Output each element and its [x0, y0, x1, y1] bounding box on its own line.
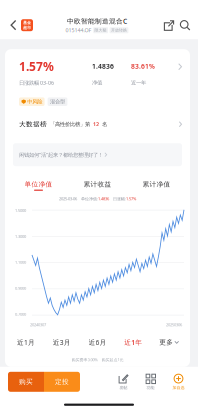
- staticText: 闲钱如何“活”起来？都给您整理好了！: [19, 151, 103, 158]
- staticText: 0.7000: [15, 311, 26, 317]
- staticText: 1.4836: [98, 196, 109, 201]
- button[interactable]: 更多: [151, 338, 187, 346]
- staticText: 中风险: [27, 98, 42, 105]
- staticText: 1.1000: [15, 260, 26, 265]
- button[interactable]: 加自选: [164, 374, 193, 390]
- button[interactable]: 近1月: [8, 336, 44, 349]
- staticText: 0.9000: [15, 286, 26, 291]
- button[interactable]: 搜索: [177, 16, 193, 34]
- staticText: 1.3000: [15, 234, 26, 239]
- button[interactable]: 基金超市: [21, 19, 33, 31]
- staticText: 基金: [23, 20, 31, 25]
- staticText: 近3月: [53, 338, 71, 347]
- staticText: 发帖: [119, 385, 127, 390]
- button[interactable]: 累计净值: [127, 180, 186, 191]
- staticText: 限大额: [95, 28, 107, 33]
- button[interactable]: 发帖: [110, 374, 137, 390]
- staticText: 累计收益: [83, 180, 111, 188]
- staticText: 1.57%: [126, 196, 136, 201]
- staticText: 1.5000: [15, 208, 26, 213]
- button[interactable]: 返回: [6, 16, 21, 34]
- button[interactable]: 定投: [44, 372, 80, 392]
- staticText: 日涨幅:: [113, 196, 126, 201]
- staticText: 中欧智能制造混合C: [67, 17, 127, 25]
- button[interactable]: 功能: [137, 374, 164, 390]
- staticText: 「高性价比榜」第: [50, 121, 90, 127]
- staticText: 购买费率0.00%: [71, 357, 97, 362]
- staticText: 20240307: [30, 322, 46, 327]
- staticText: 净值: [92, 79, 102, 86]
- staticText: 近6月: [88, 338, 106, 347]
- button[interactable]: 累计收益: [68, 180, 127, 191]
- staticText: 20250306: [166, 322, 182, 327]
- staticText: 2025-03-06: [59, 196, 77, 201]
- button[interactable]: 购买: [8, 372, 44, 392]
- staticText: 更多: [159, 338, 173, 346]
- staticText: 近一年: [131, 79, 146, 86]
- staticText: 12: [93, 121, 99, 128]
- staticText: 015144.OF: [66, 27, 92, 34]
- button[interactable]: 1.57%: [5, 49, 190, 91]
- button[interactable]: 闲钱如何“活”起来？都给您整理好了！: [5, 136, 190, 166]
- staticText: 功能: [146, 385, 154, 390]
- button[interactable]: 单位净值: [9, 180, 68, 191]
- staticText: 大数据榜: [19, 120, 47, 128]
- staticText: 累计净值: [142, 180, 170, 188]
- staticText: 购买起点1元: [101, 357, 123, 362]
- staticText: 开放转换: [111, 28, 127, 33]
- staticText: 定投: [55, 378, 69, 386]
- staticText: 日涨跌幅 03-06: [19, 79, 54, 86]
- staticText: 1.57%: [19, 58, 54, 74]
- button[interactable]: 近6月: [80, 336, 115, 349]
- staticText: 近1年: [124, 338, 142, 347]
- staticText: 单位净值: [24, 180, 52, 188]
- button[interactable]: 近3月: [44, 336, 80, 349]
- staticText: 名: [102, 121, 107, 127]
- staticText: 83.61%: [131, 62, 155, 71]
- staticText: 超市: [23, 25, 31, 30]
- staticText: 单位净值:: [81, 196, 98, 201]
- staticText: 购买: [19, 378, 33, 386]
- staticText: 混合型: [50, 98, 65, 105]
- button[interactable]: 近1年: [115, 336, 151, 349]
- staticText: 加自选: [172, 385, 184, 390]
- staticText: 近1月: [17, 338, 35, 347]
- button[interactable]: 大数据榜: [5, 112, 190, 136]
- staticText: 1.4836: [92, 62, 114, 71]
- button[interactable]: 分享: [161, 16, 177, 34]
